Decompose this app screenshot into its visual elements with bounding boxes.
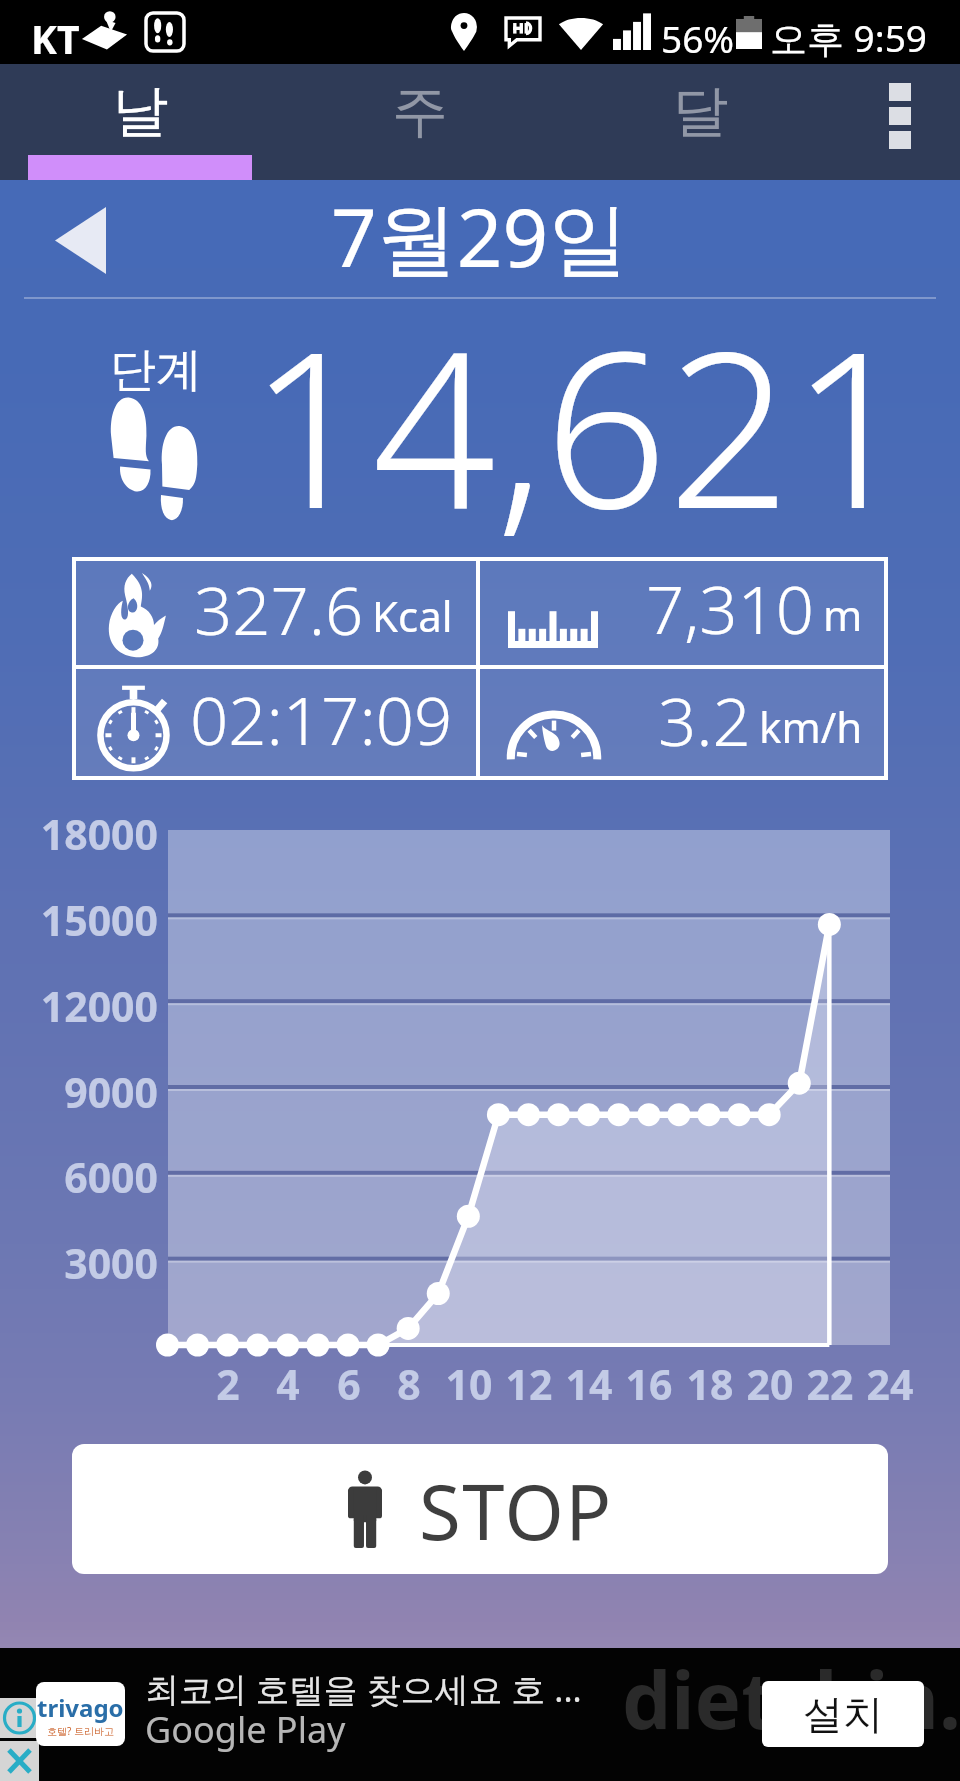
staticText: 3000 [0,1235,158,1291]
staticText: 날 [112,76,168,147]
staticText: 호텔? 트리바고 [47,1724,114,1738]
button[interactable]: 02:17:09 [72,667,478,780]
button[interactable]: 날 [0,64,280,180]
staticText: 20 [730,1356,810,1412]
button[interactable]: Previous day [30,182,130,298]
button[interactable]: 7,310 [478,557,888,667]
staticText: 14 [549,1356,629,1412]
staticText: 15000 [0,892,158,948]
button[interactable]: 달 [560,64,840,180]
staticText: 6000 [0,1149,158,1205]
button[interactable]: More options [840,64,960,180]
button[interactable]: 327.6 [72,557,478,667]
staticText: 8 [369,1356,449,1412]
staticText: 16 [609,1356,689,1412]
staticText: 14,621 [249,277,915,571]
staticText: 2 [188,1356,268,1412]
staticText: dietshin.com [622,1646,960,1752]
staticText: 10 [429,1356,509,1412]
staticText: 오후 9:59 [770,12,928,63]
staticText: 4 [248,1356,328,1412]
button[interactable]: 설치 [762,1681,924,1747]
staticText: 7,310 [646,562,815,653]
staticText: 24 [850,1356,930,1412]
staticText: 22 [790,1356,870,1412]
button[interactable]: Ad info [0,1698,39,1738]
staticText: 327.6 [194,563,364,654]
staticText: 6 [309,1356,389,1412]
staticText: 단계 [110,341,202,399]
staticText: 최코의 호텔을 찾으세요 호 ... [145,1666,582,1712]
staticText: km/h [759,698,863,755]
staticText: 12 [489,1356,569,1412]
staticText: 18 [670,1356,750,1412]
staticText: m [823,586,863,643]
staticText: Kcal [372,587,453,644]
staticText: 56% [661,13,735,63]
staticText: 달 [672,76,728,147]
button[interactable]: 주 [280,64,560,180]
staticText: 9000 [0,1064,158,1120]
staticText: 3.2 [658,674,751,765]
staticText: 12000 [0,978,158,1034]
staticText: 주 [392,76,448,147]
staticText: 02:17:09 [190,673,453,764]
button[interactable]: Close ad [0,1741,39,1781]
button[interactable]: STOP [72,1444,888,1574]
staticText: trivago [37,1691,124,1724]
staticText: Google Play [145,1705,346,1754]
staticText: 18000 [0,806,158,862]
staticText: STOP [419,1459,613,1563]
button[interactable]: 3.2 [478,667,888,780]
staticText: 설치 [803,1689,883,1739]
staticText: KT [31,12,80,65]
staticText: 7월29일 [331,181,629,290]
